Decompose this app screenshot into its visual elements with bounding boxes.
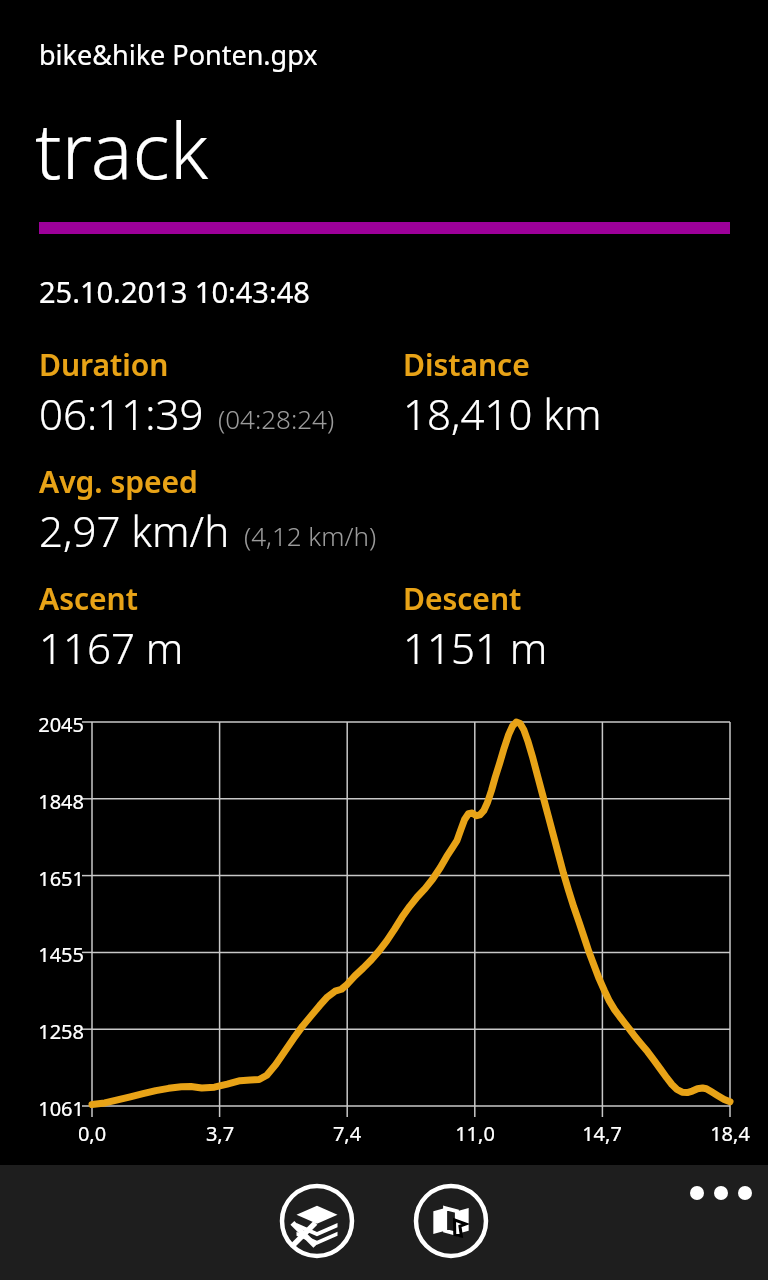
staticText: 18,4 <box>700 1120 760 1147</box>
staticText: Avg. speed <box>39 461 198 502</box>
staticText: 2,97 km/h <box>39 502 230 559</box>
button[interactable]: Toggle track layers <box>279 1183 355 1259</box>
staticText: 1061 <box>28 1095 84 1122</box>
staticText: 06:11:39 <box>39 385 204 442</box>
staticText: 1167 m <box>39 619 184 676</box>
staticText: 1455 <box>28 941 84 968</box>
staticText: 1848 <box>28 788 84 815</box>
staticText: Descent <box>403 578 522 619</box>
staticText: 14,7 <box>572 1120 632 1147</box>
staticText: 1651 <box>28 865 84 892</box>
staticText: (4,12 km/h) <box>244 518 377 553</box>
staticText: 25.10.2013 10:43:48 <box>39 272 310 311</box>
staticText: 1258 <box>28 1018 84 1045</box>
staticText: (04:28:24) <box>218 401 335 436</box>
staticText: 2045 <box>28 711 84 738</box>
staticText: Ascent <box>39 578 138 619</box>
staticText: bike&hike Ponten.gpx <box>39 36 318 73</box>
button[interactable]: More options <box>682 1165 760 1221</box>
button[interactable]: Show map <box>413 1183 489 1259</box>
staticText: 11,0 <box>445 1120 505 1147</box>
staticText: 0,0 <box>62 1120 122 1147</box>
staticText: 7,4 <box>317 1120 377 1147</box>
staticText: 18,410 km <box>403 385 602 442</box>
staticText: track <box>35 96 209 202</box>
staticText: 1151 m <box>403 619 548 676</box>
staticText: 3,7 <box>190 1120 250 1147</box>
staticText: Distance <box>403 344 530 385</box>
staticText: Duration <box>39 344 169 385</box>
